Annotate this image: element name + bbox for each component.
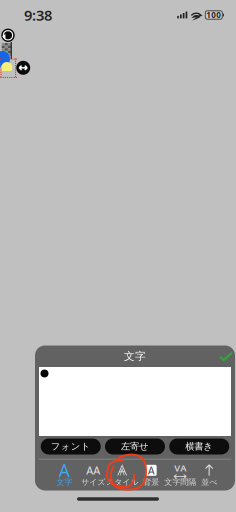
staticText: 100 (206, 10, 221, 20)
staticText: スタイル (106, 477, 138, 487)
staticText: サイズ (81, 477, 105, 487)
button[interactable]: 左寄せ (105, 438, 165, 454)
button[interactable]: AA (79, 463, 108, 489)
button[interactable]: A (137, 463, 166, 489)
staticText: フォント (51, 441, 91, 452)
button[interactable]: A (50, 463, 79, 489)
staticText: 文字 (56, 477, 72, 487)
staticText: A (148, 463, 155, 477)
staticText: 9:38 (24, 5, 52, 25)
staticText: 背景 (143, 477, 159, 487)
button[interactable]: Done (219, 352, 233, 361)
staticText: 左寄せ (121, 441, 149, 452)
button[interactable]: VA (166, 463, 195, 489)
staticText: 文字間隔 (164, 477, 196, 487)
staticText: 文字 (124, 350, 146, 363)
staticText: VA (174, 462, 186, 474)
staticText: 並べ (201, 477, 217, 487)
button[interactable]: フォント (41, 438, 101, 454)
staticText: AA (86, 463, 100, 477)
staticText: A (59, 459, 70, 482)
button[interactable]: 並べ (195, 463, 224, 489)
staticText: 横書き (185, 441, 213, 452)
button[interactable]: スタイル (108, 463, 137, 489)
button[interactable]: 横書き (169, 438, 229, 454)
